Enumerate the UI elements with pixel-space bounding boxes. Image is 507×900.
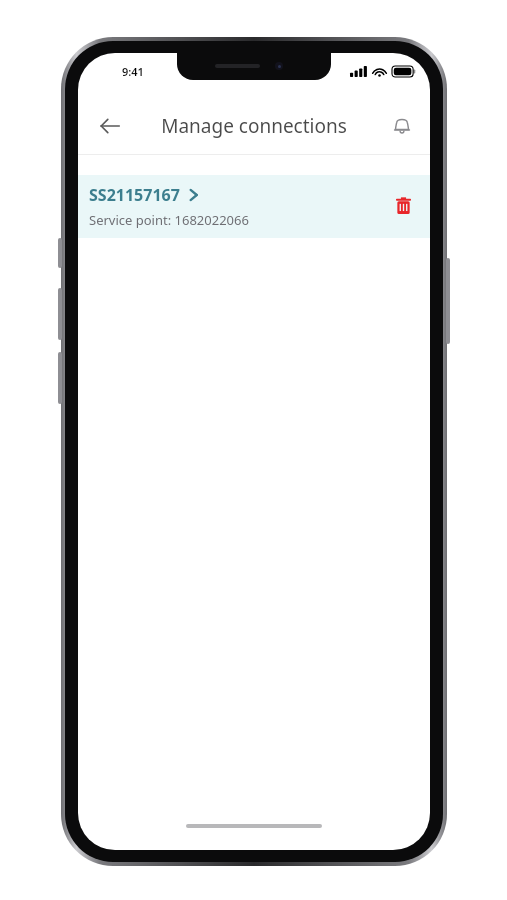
staticText: SS21157167 xyxy=(89,184,180,206)
button[interactable]: SS21157167 xyxy=(78,175,430,238)
button[interactable]: Notifications xyxy=(380,104,424,148)
button[interactable]: Back xyxy=(88,104,132,148)
staticText: Service point: 1682022066 xyxy=(89,211,249,229)
button[interactable]: Delete connection xyxy=(383,186,423,226)
staticText: 9:41 xyxy=(122,64,144,79)
staticText: Manage connections xyxy=(161,113,347,139)
